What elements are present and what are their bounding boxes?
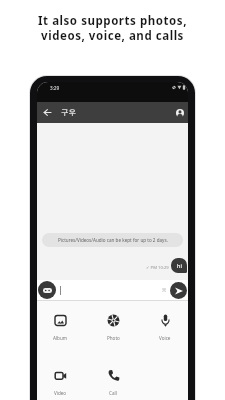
staticText: It also supports photos, videos, voice, … [38, 13, 187, 43]
staticText: ※ [162, 287, 167, 294]
button[interactable] [176, 109, 184, 117]
button[interactable]: ※ [58, 282, 169, 299]
staticText: Pictures/Videos/Audio can be kept for up… [58, 237, 168, 243]
staticText: hi [177, 262, 182, 269]
staticText: ✓ PM 10:29 [146, 265, 169, 271]
button[interactable]: Video [37, 369, 83, 396]
staticText: 구우 [61, 108, 76, 117]
staticText: Call [109, 390, 117, 396]
button[interactable]: Voice [142, 314, 188, 341]
staticText: 3:29 [50, 85, 60, 91]
button[interactable]: Album [37, 314, 83, 341]
staticText: Album [53, 335, 68, 341]
staticText: Voice [159, 335, 171, 341]
staticText: Photo [107, 335, 120, 341]
button[interactable] [170, 282, 187, 299]
button[interactable] [38, 281, 56, 299]
button[interactable]: Call [90, 369, 136, 396]
button[interactable]: 구우 [37, 102, 188, 123]
button[interactable]: Photo [90, 314, 136, 341]
staticText: Video [54, 390, 67, 396]
